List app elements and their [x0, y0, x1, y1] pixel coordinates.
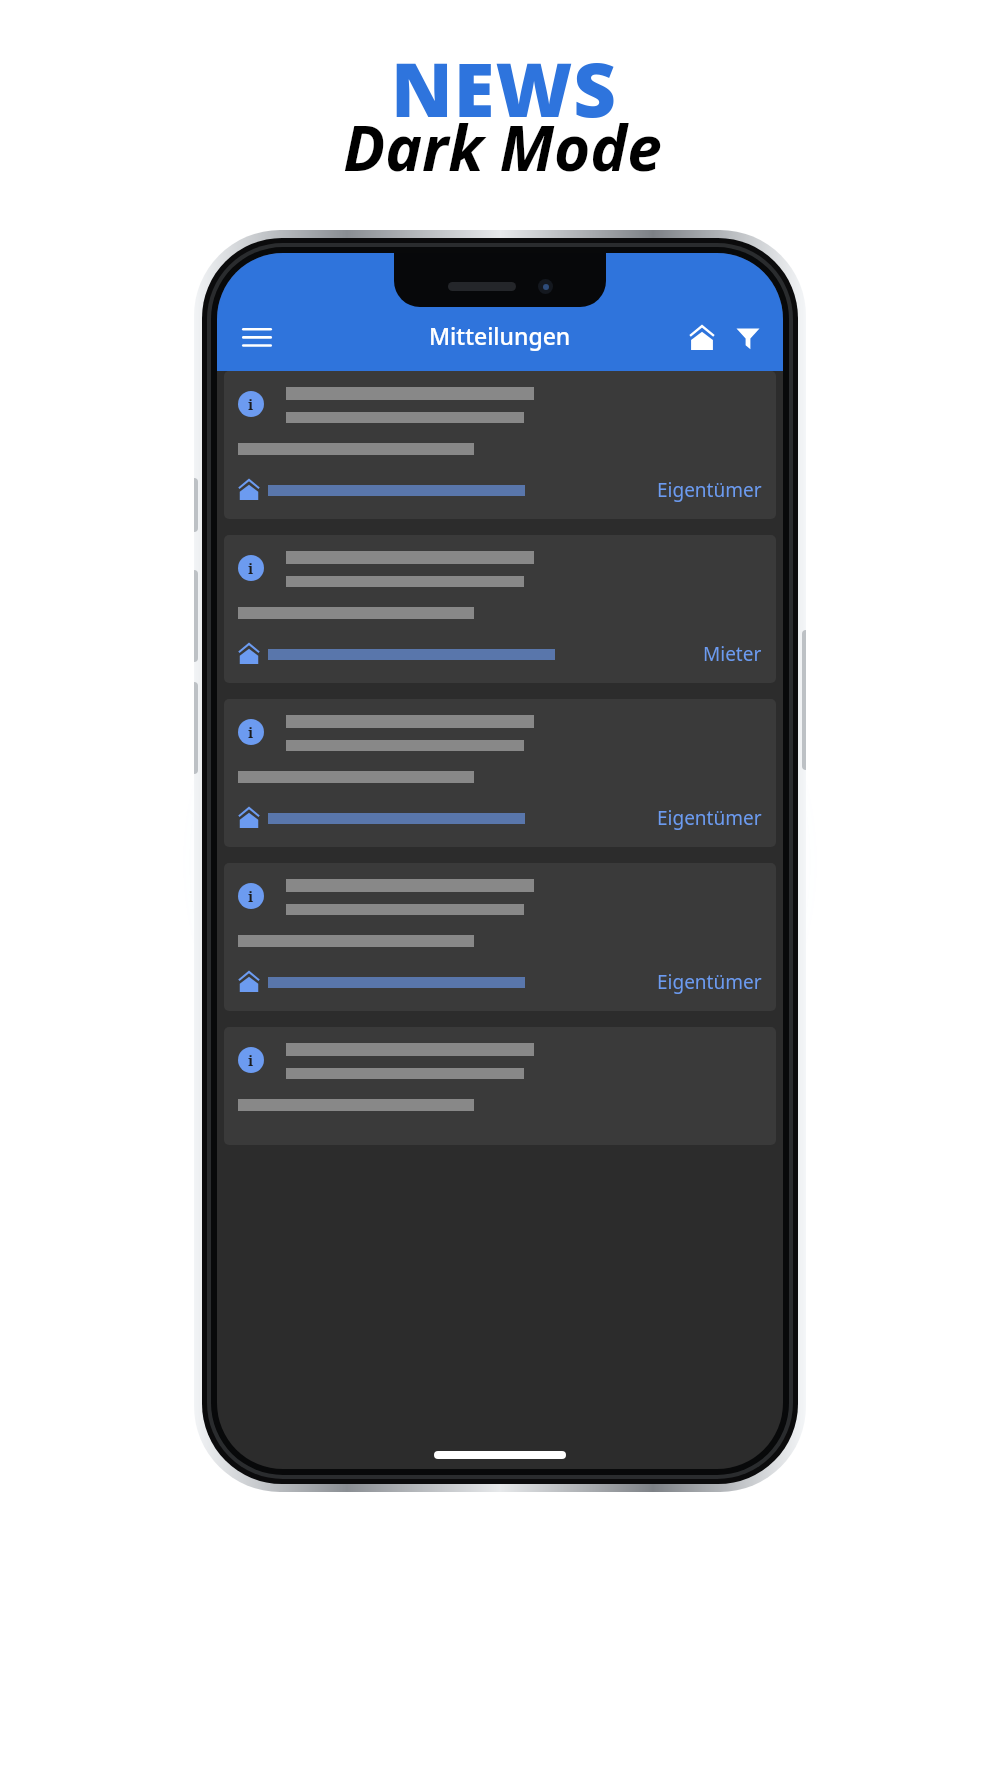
button[interactable]: i — [224, 1027, 776, 1145]
staticText: i — [248, 886, 254, 906]
staticText: Eigentümer — [657, 805, 762, 831]
button[interactable]: Home — [679, 315, 725, 361]
button[interactable]: i — [224, 535, 776, 683]
staticText: Eigentümer — [657, 969, 762, 995]
staticText: i — [248, 1050, 254, 1070]
staticText: Mitteilungen — [429, 320, 571, 351]
button[interactable]: Menu — [231, 311, 283, 363]
staticText: Eigentümer — [657, 477, 762, 503]
button[interactable]: i — [224, 863, 776, 1011]
staticText: i — [248, 394, 254, 414]
staticText: NEWS — [391, 38, 617, 139]
button[interactable]: i — [224, 371, 776, 519]
button[interactable]: i — [224, 699, 776, 847]
staticText: i — [248, 558, 254, 578]
staticText: Dark Mode — [343, 105, 662, 189]
staticText: Mieter — [703, 641, 762, 667]
staticText: i — [248, 722, 254, 742]
button[interactable]: Filter — [725, 315, 771, 361]
